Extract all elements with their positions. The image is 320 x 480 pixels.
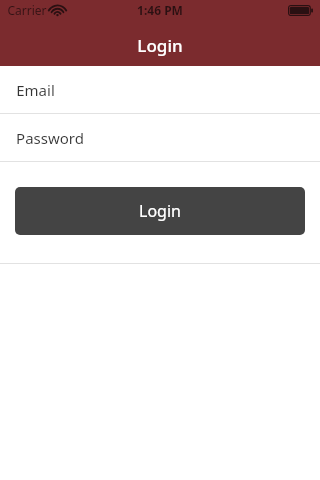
staticText: Login [137, 34, 183, 57]
staticText: Login [139, 200, 181, 222]
staticText: Password [16, 128, 84, 148]
staticText: 1:46 PM [137, 2, 183, 18]
other: Battery full [288, 5, 314, 16]
staticText: Carrier [7, 2, 47, 18]
other: Wi-Fi signal [51, 5, 64, 16]
staticText: Email [16, 80, 55, 100]
button[interactable]: Password [0, 114, 320, 161]
button[interactable]: Email [0, 66, 320, 113]
button[interactable]: Login [15, 187, 305, 235]
